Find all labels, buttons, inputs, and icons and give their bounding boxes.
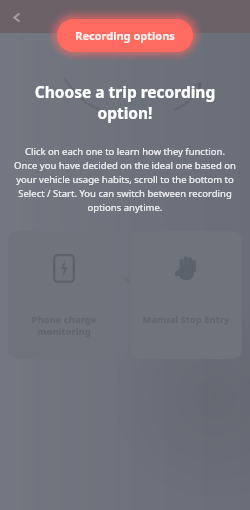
button[interactable]: Recording options xyxy=(57,19,193,52)
staticText: Recording options xyxy=(75,28,175,43)
button[interactable]: Manual Stop Entry xyxy=(130,231,242,359)
staticText: Click on each one to learn how they func… xyxy=(13,145,237,214)
staticText: Choose a trip recording option! xyxy=(10,81,240,123)
staticText: Manual Stop Entry xyxy=(134,313,238,326)
button[interactable]: Back xyxy=(2,2,32,32)
staticText: Phone charge monitoring xyxy=(12,313,116,338)
